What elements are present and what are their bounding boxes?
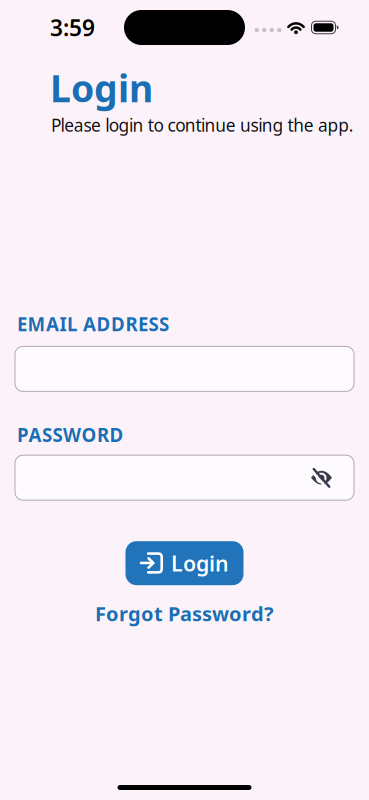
button[interactable]: Forgot Password?	[95, 600, 274, 627]
staticText: Please login to continue using the app.	[51, 114, 354, 137]
button[interactable]	[15, 455, 354, 500]
staticText: 3:59	[50, 12, 95, 42]
staticText: EMAIL ADDRESS	[17, 312, 169, 336]
staticText: Forgot Password?	[95, 600, 274, 627]
button[interactable]	[311, 468, 332, 487]
button[interactable]	[15, 346, 354, 391]
staticText: PASSWORD	[17, 422, 123, 447]
staticText: Login	[50, 63, 153, 113]
staticText: Login	[171, 549, 229, 577]
button[interactable]: Login	[125, 541, 243, 585]
